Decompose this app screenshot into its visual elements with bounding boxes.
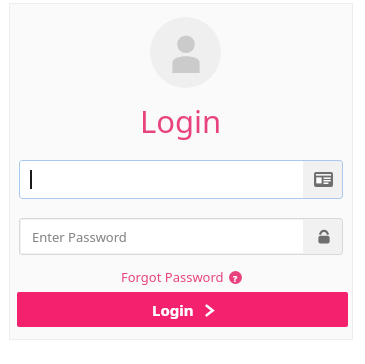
button[interactable]: Enter Password — [19, 218, 343, 255]
button[interactable]: Forgot Password — [9, 267, 353, 287]
staticText: Forgot Password — [121, 268, 224, 286]
button[interactable]: User ID — [303, 160, 343, 199]
button[interactable]: User ID — [19, 160, 343, 199]
staticText: ? — [233, 272, 238, 284]
staticText: Enter Password — [32, 228, 127, 246]
button[interactable]: Password — [305, 218, 343, 255]
staticText: Login — [152, 300, 194, 320]
staticText: Login — [140, 100, 222, 142]
button[interactable]: Login — [17, 292, 348, 327]
